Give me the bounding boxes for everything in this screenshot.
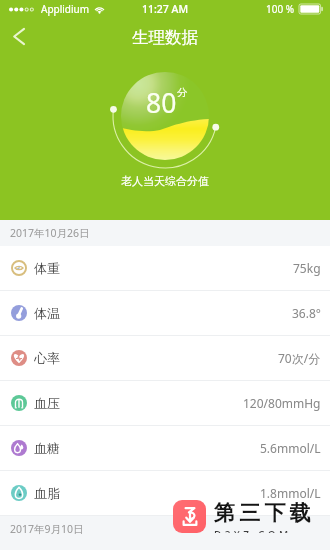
- staticText: 36.8°: [292, 305, 321, 321]
- staticText: 120/80mmHg: [243, 395, 321, 411]
- staticText: D3XZ.COM: [214, 528, 292, 533]
- staticText: 2017年9月10日: [10, 522, 84, 536]
- button[interactable]: 血脂: [0, 471, 330, 516]
- staticText: 100 %: [266, 2, 295, 16]
- staticText: 80: [146, 85, 177, 121]
- staticText: 1.8mmol/L: [260, 485, 321, 501]
- button[interactable]: 血糖: [0, 426, 330, 471]
- button[interactable]: 心率: [0, 336, 330, 381]
- staticText: 心率: [34, 350, 60, 366]
- staticText: 血脂: [34, 485, 60, 501]
- button[interactable]: 血压: [0, 381, 330, 426]
- staticText: 体温: [34, 305, 60, 321]
- button[interactable]: 体温: [0, 291, 330, 336]
- button[interactable]: 体重: [0, 246, 330, 291]
- staticText: 血糖: [34, 440, 60, 456]
- staticText: 5.6mmol/L: [260, 440, 321, 456]
- staticText: 第三下载: [214, 500, 315, 526]
- staticText: 血压: [34, 395, 60, 411]
- staticText: 70次/分: [278, 350, 321, 366]
- button[interactable]: Back: [0, 18, 38, 54]
- staticText: 生理数据: [0, 27, 330, 48]
- staticText: 体重: [34, 260, 60, 276]
- staticText: 分: [177, 86, 188, 99]
- staticText: 11:27 AM: [142, 2, 189, 16]
- staticText: 2017年10月26日: [10, 226, 90, 240]
- staticText: Applidium: [41, 2, 90, 16]
- staticText: 75kg: [293, 260, 321, 276]
- staticText: 老人当天综合分值: [0, 174, 330, 188]
